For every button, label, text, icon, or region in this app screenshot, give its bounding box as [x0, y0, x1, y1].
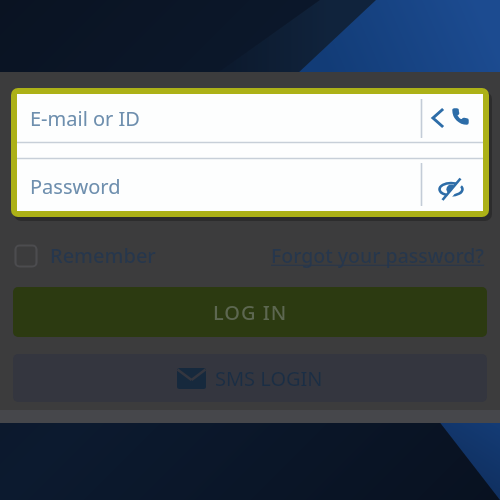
button[interactable]: SMS LOGIN: [13, 354, 487, 402]
staticText: E-mail or ID: [30, 105, 140, 132]
button[interactable]: [438, 176, 465, 203]
button[interactable]: [451, 107, 470, 126]
button[interactable]: Remember: [14, 242, 156, 269]
button[interactable]: Forgot your password?: [271, 242, 485, 269]
button[interactable]: Password: [17, 159, 417, 211]
staticText: Password: [30, 173, 121, 200]
staticText: LOG IN: [213, 299, 288, 326]
button[interactable]: E-mail or ID: [17, 94, 417, 142]
staticText: SMS LOGIN: [215, 365, 323, 392]
button[interactable]: [429, 107, 445, 129]
staticText: Remember: [50, 242, 156, 269]
button[interactable]: LOG IN: [13, 287, 487, 337]
